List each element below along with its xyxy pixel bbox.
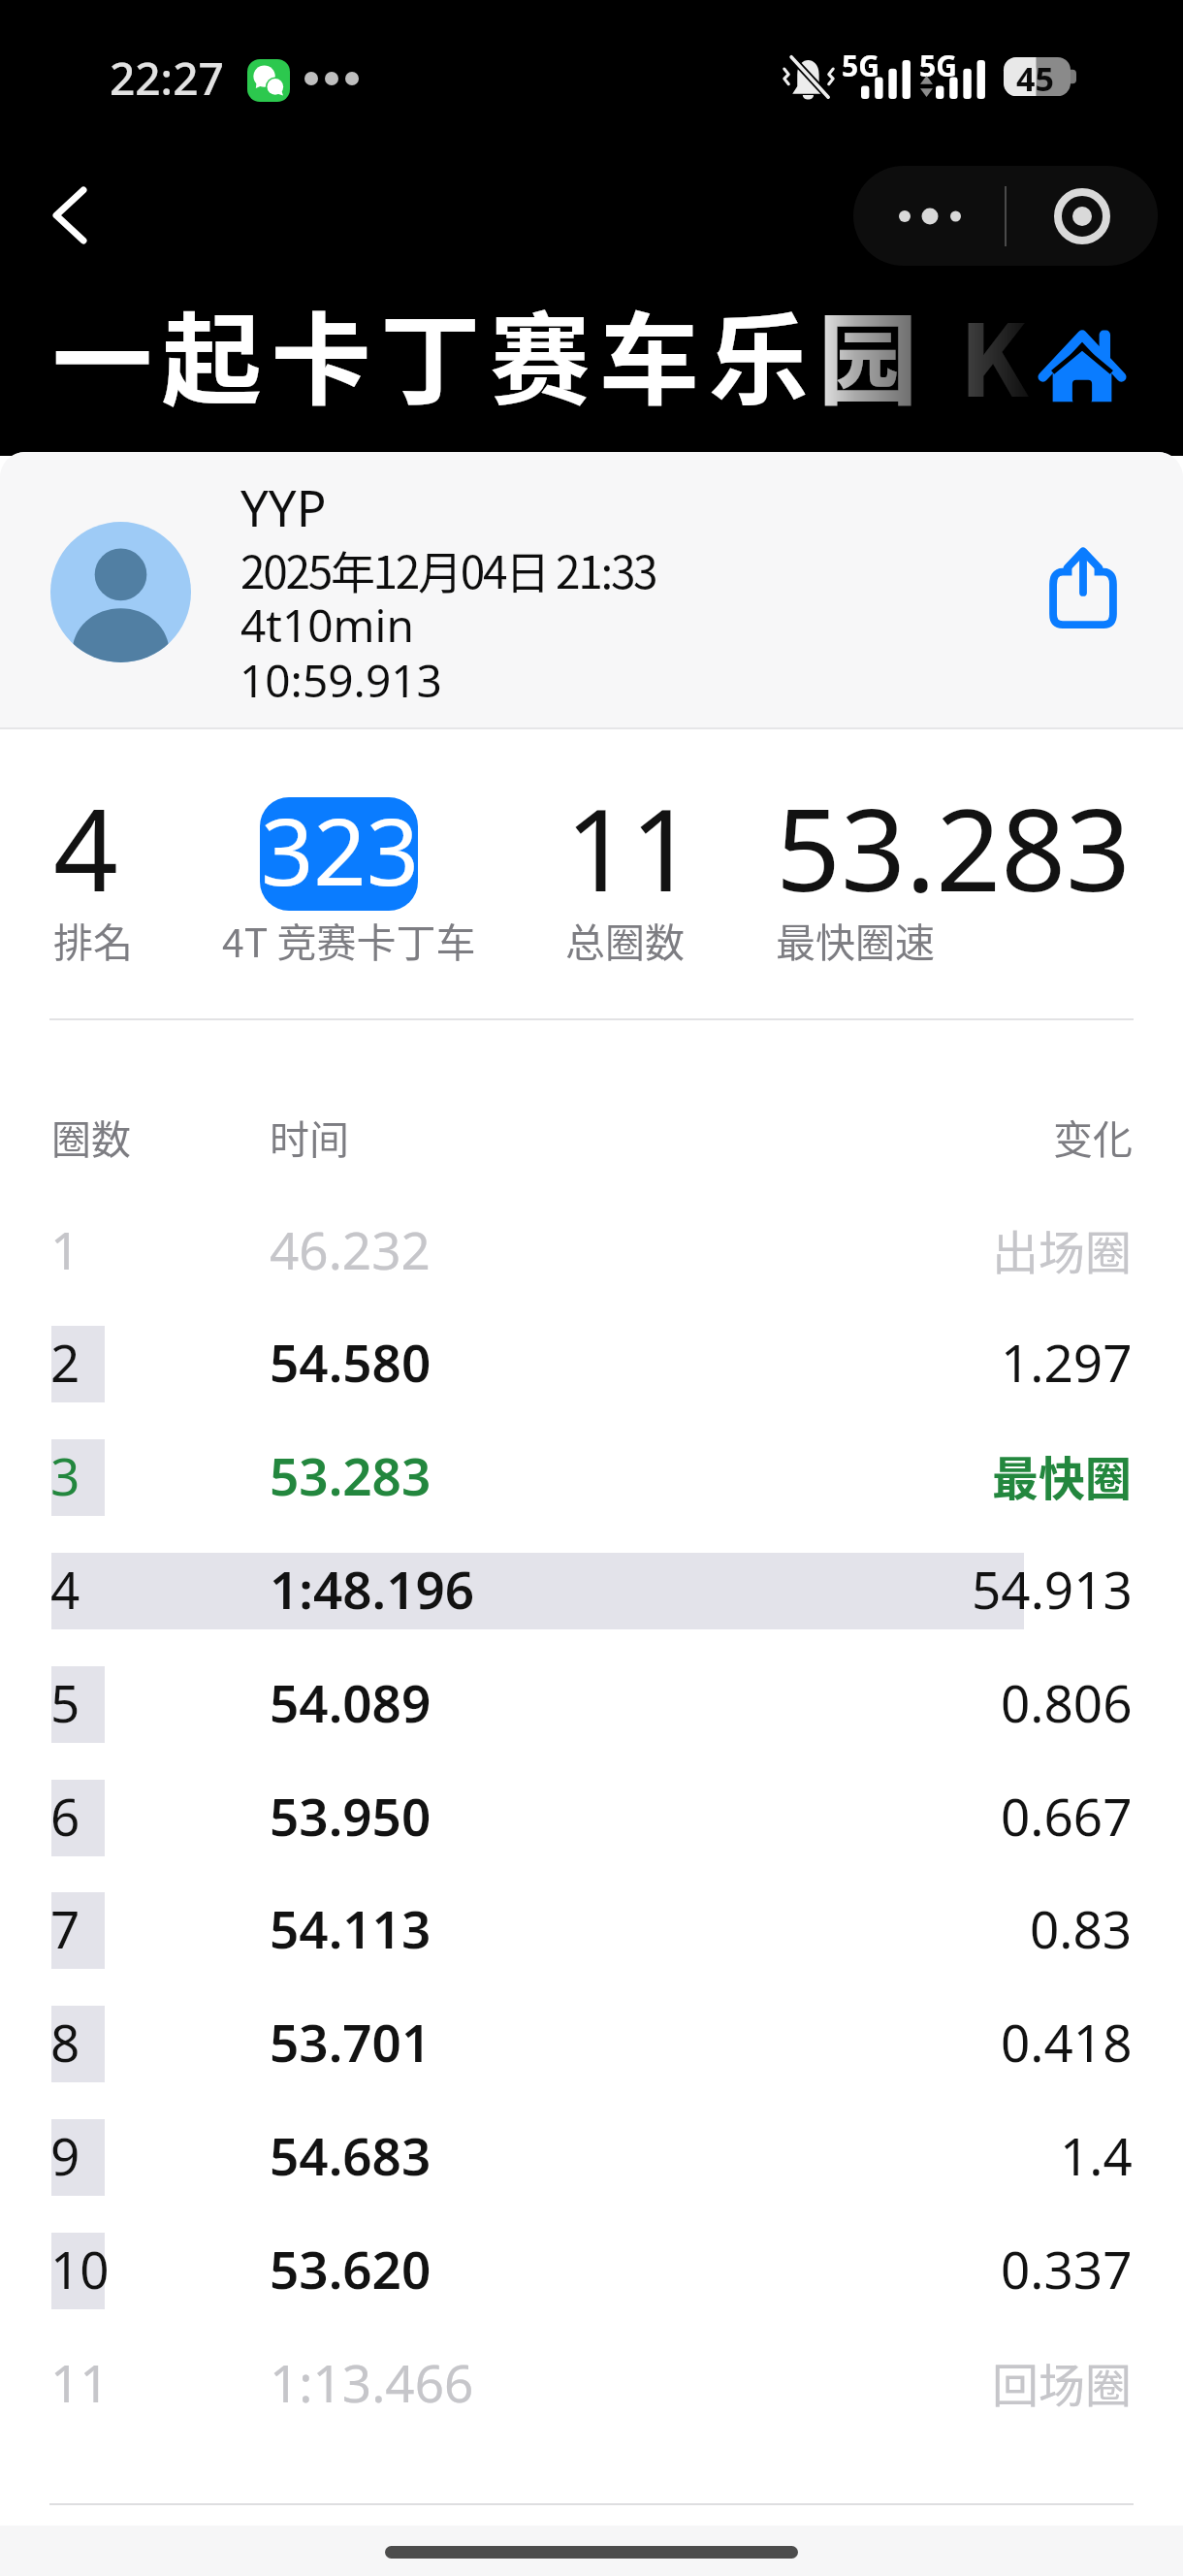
button[interactable]: 9 — [0, 2101, 1183, 2214]
staticText: 4T 竞赛卡丁车 — [222, 911, 476, 968]
staticText: 53.950 — [270, 1781, 432, 1851]
staticText: YYP — [240, 473, 327, 540]
staticText: 4t10min — [240, 595, 414, 656]
staticText: 1:48.196 — [270, 1554, 475, 1624]
button[interactable]: 2 — [0, 1307, 1183, 1421]
staticText: 0.83 — [1030, 1893, 1133, 1963]
staticText: 变化 — [1053, 1108, 1133, 1165]
button[interactable]: 8 — [0, 1987, 1183, 2101]
staticText: 54.580 — [270, 1327, 432, 1397]
staticText: 回场圈 — [992, 2348, 1133, 2416]
staticText: 11 — [565, 770, 695, 924]
button[interactable]: Close mini program — [1006, 166, 1158, 266]
staticText: 53.701 — [270, 2007, 432, 2077]
staticText: 8 — [50, 2007, 80, 2077]
staticText: 0.806 — [1001, 1667, 1133, 1737]
staticText: 10 — [50, 2234, 110, 2303]
button[interactable]: 10 — [0, 2214, 1183, 2328]
staticText: 最快圈 — [992, 1441, 1133, 1509]
button[interactable]: 4 — [0, 1534, 1183, 1648]
staticText: 0.418 — [1001, 2007, 1133, 2077]
staticText: 46.232 — [270, 1214, 431, 1284]
button[interactable]: YYP — [0, 452, 1183, 729]
staticText: 0.337 — [1001, 2234, 1133, 2303]
button[interactable]: 5 — [0, 1648, 1183, 1761]
staticText: 0.667 — [1001, 1781, 1133, 1851]
staticText: 出场圈 — [992, 1215, 1133, 1283]
staticText: 22:27 — [110, 48, 224, 109]
staticText: 10:59.913 — [240, 650, 442, 711]
staticText: 总圈数 — [565, 911, 685, 968]
staticText: 圈数 — [51, 1108, 131, 1165]
staticText: 5 — [50, 1667, 80, 1737]
staticText: 53.283 — [776, 770, 1131, 924]
staticText: 54.089 — [270, 1667, 432, 1737]
staticText: 3 — [50, 1440, 80, 1510]
staticText: 9 — [50, 2120, 80, 2190]
staticText: 54.683 — [270, 2120, 432, 2190]
staticText: 6 — [50, 1781, 80, 1851]
staticText: 54.913 — [972, 1554, 1133, 1624]
button[interactable]: Back — [12, 157, 128, 274]
staticText: 4 — [53, 770, 118, 924]
button[interactable]: More options — [853, 166, 1006, 266]
button[interactable]: Share — [1038, 539, 1129, 636]
staticText: 53.283 — [270, 1440, 432, 1510]
staticText: 5G — [919, 46, 957, 85]
staticText: 时间 — [270, 1108, 349, 1165]
staticText: 54.113 — [270, 1893, 432, 1963]
staticText: 排名 — [53, 911, 133, 968]
staticText: 323 — [261, 787, 420, 912]
staticText: 一起卡丁赛车乐园 K — [52, 281, 1038, 426]
button[interactable]: 11 — [0, 2328, 1183, 2441]
staticText: 45 — [1016, 56, 1054, 101]
staticText: 2025年12月04日 21:33 — [240, 537, 656, 602]
staticText: 53.620 — [270, 2234, 432, 2303]
button[interactable]: 1 — [0, 1195, 1183, 1308]
staticText: 11 — [50, 2347, 110, 2417]
staticText: 1:13.466 — [270, 2347, 474, 2417]
button[interactable]: 6 — [0, 1761, 1183, 1875]
staticText: 最快圈速 — [776, 911, 935, 968]
staticText: 1.297 — [1001, 1327, 1133, 1397]
staticText: 5G — [842, 46, 879, 85]
staticText: 1.4 — [1060, 2120, 1133, 2190]
staticText: 7 — [50, 1893, 80, 1963]
button[interactable]: 3 — [0, 1421, 1183, 1534]
staticText: 1 — [50, 1214, 80, 1284]
staticText: 2 — [50, 1327, 80, 1397]
button[interactable]: 7 — [0, 1874, 1183, 1987]
staticText: 4 — [50, 1554, 80, 1624]
